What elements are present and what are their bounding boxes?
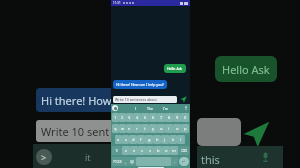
button[interactable]: d <box>129 135 137 144</box>
button[interactable]: 5 <box>141 113 149 122</box>
button[interactable]: Emoji <box>129 157 136 166</box>
staticText: Hello Ask <box>167 66 183 71</box>
button[interactable]: r <box>133 124 141 133</box>
button[interactable]: f <box>137 135 145 144</box>
staticText: Hi there! How can I help you? <box>116 82 164 87</box>
staticText: ⇧ <box>115 148 119 153</box>
button[interactable]: e <box>126 124 133 133</box>
button[interactable]: s <box>122 135 129 144</box>
button[interactable]: w <box>119 124 126 133</box>
staticText: 1 <box>114 115 117 120</box>
button[interactable]: h <box>153 135 161 144</box>
button[interactable]: u <box>157 124 165 133</box>
staticText: 9 <box>176 115 179 120</box>
staticText: g <box>148 137 151 142</box>
button[interactable]: y <box>149 124 157 133</box>
button[interactable]: o <box>173 124 181 133</box>
button[interactable]: m <box>170 146 178 155</box>
staticText: > <box>41 151 47 163</box>
button[interactable]: g <box>145 135 153 144</box>
button[interactable]: Enter <box>179 157 189 166</box>
staticText: 2 <box>121 115 124 120</box>
staticText: j <box>164 137 166 142</box>
button[interactable]: x <box>130 146 138 155</box>
staticText: o <box>176 126 179 131</box>
staticText: . <box>174 159 176 164</box>
button[interactable]: Hello Ask <box>215 56 277 82</box>
button[interactable]: i <box>165 124 173 133</box>
staticText: I'm <box>163 106 169 111</box>
staticText: 4 <box>136 115 139 120</box>
button[interactable]: q <box>112 124 119 133</box>
staticText: x <box>133 148 136 153</box>
button[interactable]: Assistant <box>112 105 118 111</box>
button[interactable]: Backspace <box>178 146 189 155</box>
staticText: The <box>147 106 154 111</box>
staticText: w <box>121 126 125 131</box>
button[interactable]: , <box>122 157 129 166</box>
button[interactable]: 0 <box>181 113 189 122</box>
button[interactable]: j <box>161 135 169 144</box>
button[interactable]: . <box>171 157 178 166</box>
button[interactable]: l <box>177 135 185 144</box>
button[interactable]: b <box>154 146 162 155</box>
staticText: d <box>132 137 135 142</box>
button[interactable]: Voice input <box>257 149 273 165</box>
staticText: l <box>180 137 182 142</box>
staticText: p <box>184 126 187 131</box>
staticText: 6 <box>152 115 155 120</box>
staticText: z <box>125 148 127 153</box>
button[interactable]: 6 <box>149 113 157 122</box>
staticText: b <box>157 148 160 153</box>
staticText: r <box>136 126 138 131</box>
button[interactable]: Hi there! How c <box>36 88 126 112</box>
staticText: ⌫ <box>181 148 187 153</box>
button[interactable]: Shift <box>112 146 122 155</box>
staticText: i <box>168 126 170 131</box>
staticText: a <box>117 137 120 142</box>
staticText: Hi there! How c <box>41 93 120 108</box>
button[interactable]: k <box>169 135 177 144</box>
staticText: y <box>152 126 155 131</box>
staticText: n <box>165 148 168 153</box>
staticText: this <box>201 152 220 167</box>
button[interactable]: The <box>143 106 158 111</box>
staticText: 3 <box>128 115 131 120</box>
button[interactable]: a <box>115 135 122 144</box>
staticText: , <box>125 159 127 164</box>
button[interactable]: v <box>146 146 154 155</box>
staticText: ☺ <box>130 159 135 164</box>
button[interactable]: Hello Ask <box>164 64 186 73</box>
button[interactable]: Hi there! How can I help you? <box>113 80 167 89</box>
button[interactable]: I'm <box>158 106 173 111</box>
button[interactable]: t <box>141 124 149 133</box>
button[interactable]: Write 10 sent <box>36 120 126 142</box>
staticText: ?123 <box>113 159 122 164</box>
staticText: Hello Ask <box>222 62 270 77</box>
staticText: k <box>172 137 175 142</box>
staticText: u <box>160 126 163 131</box>
button[interactable]: Shift <box>36 149 52 165</box>
button[interactable]: 7 <box>157 113 165 122</box>
button[interactable]: I <box>128 106 143 111</box>
button[interactable]: Voice typing <box>183 105 189 111</box>
button[interactable]: n <box>162 146 170 155</box>
button[interactable]: 9 <box>173 113 181 122</box>
button[interactable]: 1 <box>112 113 119 122</box>
button[interactable]: Send <box>179 95 188 104</box>
button[interactable]: 4 <box>133 113 141 122</box>
staticText: it <box>85 151 91 163</box>
staticText: h <box>156 137 159 142</box>
button[interactable]: p <box>181 124 189 133</box>
staticText: 11:31 <box>113 1 121 5</box>
button[interactable]: 8 <box>165 113 173 122</box>
button[interactable]: 3 <box>126 113 133 122</box>
button[interactable]: ?123 <box>112 157 122 166</box>
button[interactable]: z <box>122 146 130 155</box>
staticText: m <box>172 148 176 153</box>
staticText: Write 10 sent <box>41 124 110 139</box>
button[interactable]: Write 10 sentences about <box>113 96 177 103</box>
button[interactable]: c <box>138 146 146 155</box>
button[interactable]: 2 <box>119 113 126 122</box>
